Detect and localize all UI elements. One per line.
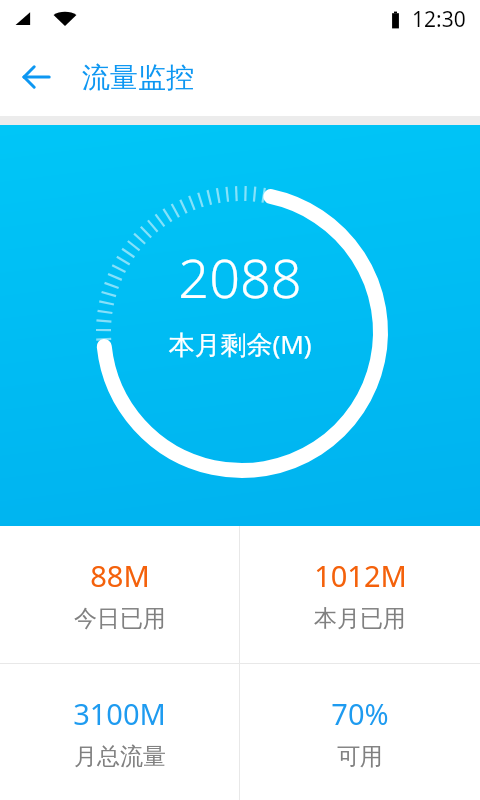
staticText: 2088 (178, 240, 302, 314)
staticText: 3100M (73, 694, 166, 733)
staticText: 本月剩余(M) (168, 326, 312, 362)
staticText: 本月已用 (314, 604, 406, 633)
staticText: 1012M (314, 556, 407, 595)
staticText: 88M (90, 556, 150, 595)
button[interactable]: 1012M (240, 526, 480, 663)
staticText: 月总流量 (74, 742, 166, 771)
button[interactable]: 3100M (0, 664, 239, 800)
staticText: 可用 (337, 742, 383, 771)
staticText: 70% (331, 694, 389, 733)
button[interactable]: Back (8, 49, 64, 105)
staticText: 12:30 (412, 5, 466, 34)
button[interactable]: 70% (240, 664, 480, 800)
staticText: 今日已用 (74, 604, 166, 633)
button[interactable]: 88M (0, 526, 239, 663)
staticText: 流量监控 (82, 60, 194, 95)
